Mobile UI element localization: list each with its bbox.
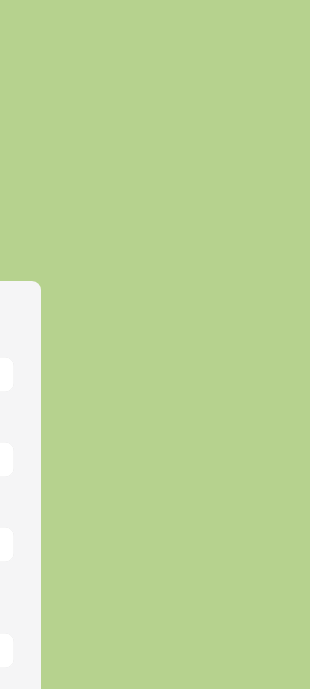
button[interactable]: List item 4 — [0, 633, 14, 668]
button[interactable]: List item 3 — [0, 527, 14, 562]
button[interactable]: List item 2 — [0, 442, 14, 477]
button[interactable]: List item 1 — [0, 357, 14, 392]
button[interactable]: Navigation panel — [0, 281, 41, 689]
